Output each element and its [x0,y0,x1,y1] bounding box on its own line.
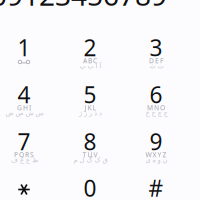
staticText: 2 [83,32,96,62]
staticText: 4 [17,79,30,109]
staticText: ق ک گ ل م [73,156,107,164]
staticText: ج چ ح خ [145,109,167,117]
staticText: P Q R S [14,150,34,159]
button[interactable]: 5 [59,84,121,130]
button[interactable]: 3 [125,37,187,83]
staticText: 5 [83,79,96,109]
button[interactable]: 8 [59,131,121,177]
button[interactable]: # [125,178,187,200]
staticText: 0 [83,173,96,200]
staticText: ت ث [149,62,163,70]
button[interactable]: 0 [59,178,121,200]
staticText: ن و ه ی [145,156,167,164]
staticText: W X Y Z [145,150,166,159]
button[interactable]: 9 [125,131,187,177]
button[interactable]: 7 [0,131,55,177]
staticText: M N O [147,103,165,112]
staticText: آ ا ب پ [79,62,101,70]
staticText: 3 [149,32,162,62]
staticText: J K L [84,103,95,112]
staticText: # [148,173,163,200]
staticText: 8 [83,126,96,156]
staticText: 6 [149,79,162,109]
button[interactable]: 1 [0,37,55,83]
staticText: A B C [83,56,97,65]
button[interactable]: 4 [0,84,55,130]
staticText: 7 [17,126,30,156]
staticText: 9 [149,126,162,156]
staticText: D E F [149,56,163,65]
staticText: د ذ ر ز ژ [78,109,101,117]
staticText: 1 [17,32,30,62]
staticText: ظ ع غ ف [10,156,37,164]
button[interactable]: 6 [125,84,187,130]
staticText: 09123456789 [0,0,167,14]
staticText: T U V [82,150,97,159]
staticText: س ش ص ض [5,109,43,117]
button[interactable]: 2 [59,37,121,83]
button[interactable]: Star [0,178,55,200]
staticText: G H I [17,103,31,112]
